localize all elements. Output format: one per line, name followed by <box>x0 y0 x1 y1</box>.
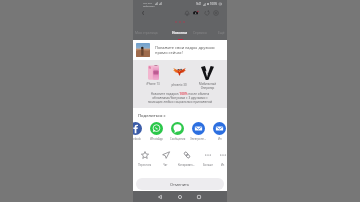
staticText: Поделиться с <box>138 113 166 119</box>
staticText: iPhone 13 <box>146 82 160 86</box>
staticText: Facebook <box>133 137 142 141</box>
button[interactable]: Recents <box>193 191 205 202</box>
button[interactable]: Копировать... <box>176 148 197 167</box>
button[interactable]: Refresh <box>202 8 212 18</box>
button[interactable]: Мобильный Оператор <box>196 65 218 90</box>
button[interactable]: phoenix 30 <box>168 65 190 87</box>
staticText: Сервисы <box>193 30 207 34</box>
staticText: Из <box>221 163 225 167</box>
staticText: Моя страница <box>135 30 158 34</box>
button[interactable]: iPhone 13 <box>142 65 164 86</box>
staticText: Ин <box>218 137 222 141</box>
button[interactable]: Сервисы <box>193 30 207 40</box>
staticText: Электронн... <box>190 137 207 141</box>
staticText: Мобильный Оператор <box>199 82 216 90</box>
staticText: phoenix 30 <box>171 83 187 87</box>
staticText: 9:41 <box>196 2 202 6</box>
staticText: Покажите свои кадры друзьям прямо сейчас… <box>155 45 224 55</box>
staticText: 100% <box>210 2 218 6</box>
button[interactable]: Ещё <box>218 30 225 40</box>
staticText: Ещё <box>218 30 225 34</box>
staticText: МТС RUS <box>143 2 152 5</box>
staticText: мобильная <box>143 5 155 8</box>
button[interactable]: Back <box>154 191 166 202</box>
button[interactable]: Моя страница <box>135 30 158 40</box>
button[interactable]: Camera <box>191 8 201 18</box>
staticText: Переслать <box>138 163 152 167</box>
button[interactable]: Back <box>137 8 148 18</box>
staticText: Новинки <box>172 30 188 34</box>
button[interactable]: Новинки <box>172 30 188 40</box>
button[interactable]: Сообщения <box>167 122 188 141</box>
button[interactable]: Переслать <box>134 148 155 167</box>
staticText: Больше <box>203 163 213 167</box>
button[interactable]: Отменить <box>136 178 224 190</box>
button[interactable]: WhatsApp <box>146 122 167 141</box>
button[interactable]: Notifications <box>182 8 192 18</box>
staticText: Сообщения <box>170 137 186 141</box>
staticText: Накопите подарок 100% после обмена облож… <box>145 92 215 104</box>
button[interactable]: Ин <box>209 122 227 141</box>
button[interactable]: Facebook <box>133 122 146 141</box>
button[interactable]: Settings <box>211 8 221 18</box>
staticText: Копировать... <box>178 163 195 167</box>
button[interactable]: Электронн... <box>188 122 209 141</box>
button[interactable]: Чат <box>155 148 176 167</box>
staticText: WhatsApp <box>150 137 163 141</box>
button[interactable]: Home <box>174 191 186 202</box>
button[interactable]: Из <box>218 148 227 167</box>
button[interactable]: Больше <box>197 148 218 167</box>
staticText: Отменить <box>170 182 190 187</box>
staticText: Чат <box>163 163 168 167</box>
